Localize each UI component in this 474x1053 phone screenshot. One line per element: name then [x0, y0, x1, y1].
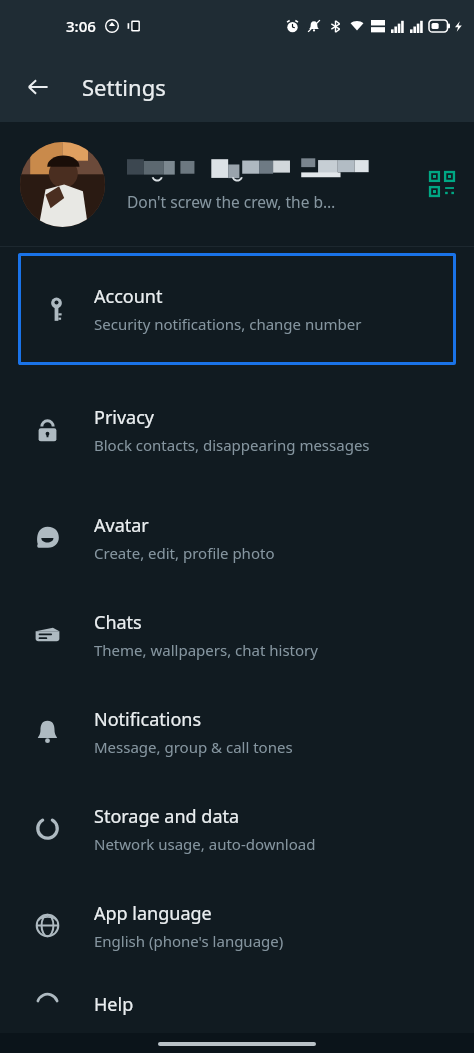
staticText: Block contacts, disappearing messages	[94, 435, 370, 455]
button[interactable]: Chats	[0, 586, 474, 683]
staticText: Create, edit, profile photo	[94, 543, 275, 563]
button[interactable]: Don't screw the crew, the b…	[0, 122, 474, 246]
staticText: Don't screw the crew, the b…	[127, 191, 336, 212]
staticText: Notifications	[94, 707, 202, 732]
staticText: Chats	[94, 610, 142, 635]
staticText: Settings	[82, 72, 166, 102]
staticText: English (phone's language)	[94, 931, 284, 951]
staticText: Help	[94, 992, 134, 1017]
staticText: Avatar	[94, 513, 149, 538]
button[interactable]: Back	[12, 61, 64, 113]
staticText: Message, group & call tones	[94, 737, 293, 757]
button[interactable]: Account	[18, 253, 456, 365]
button[interactable]: Storage and data	[0, 780, 474, 877]
staticText: App language	[94, 901, 212, 926]
staticText: 3:06	[66, 16, 96, 36]
staticText: Privacy	[94, 405, 155, 430]
button[interactable]: Avatar	[0, 489, 474, 586]
button[interactable]: Privacy	[0, 371, 474, 489]
staticText: Security notifications, change number	[94, 314, 362, 334]
button[interactable]: QR code	[418, 160, 466, 208]
staticText: Theme, wallpapers, chat history	[94, 640, 318, 660]
staticText: Network usage, auto-download	[94, 834, 316, 854]
button[interactable]: App language	[0, 877, 474, 974]
staticText: Storage and data	[94, 804, 240, 829]
button[interactable]: Help	[0, 974, 474, 1034]
staticText: Account	[94, 284, 163, 309]
button[interactable]: Notifications	[0, 683, 474, 780]
